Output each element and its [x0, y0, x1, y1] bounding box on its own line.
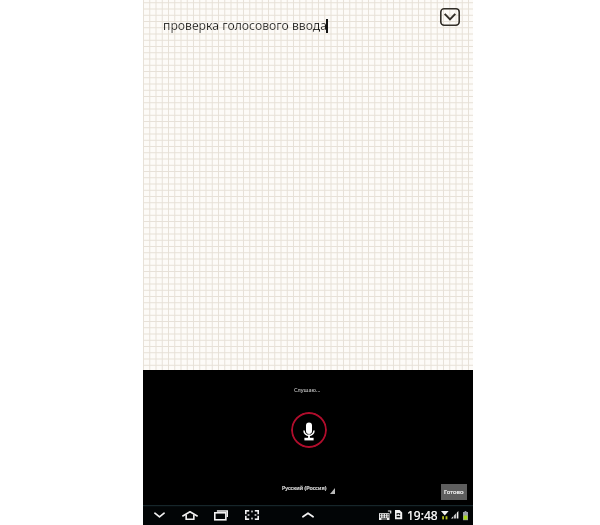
- button[interactable]: Show keyboard: [294, 505, 322, 525]
- staticText: проверка голосового ввода: [163, 17, 327, 34]
- button[interactable]: Hide keyboard: [145, 505, 173, 525]
- button[interactable]: Русский (Россия): [280, 481, 338, 497]
- staticText: Слушаю...: [294, 386, 321, 393]
- button[interactable]: Microphone: [291, 412, 327, 448]
- staticText: Русский (Россия): [282, 484, 327, 491]
- button[interactable]: Hide keyboard: [440, 8, 460, 26]
- button[interactable]: Recent apps: [207, 505, 235, 525]
- button[interactable]: Home: [176, 505, 204, 525]
- staticText: 19:48: [407, 507, 438, 523]
- button[interactable]: проверка голосового ввода: [157, 12, 433, 38]
- staticText: Готово: [444, 488, 464, 496]
- button[interactable]: Готово: [441, 484, 467, 500]
- button[interactable]: Screenshot: [238, 505, 266, 525]
